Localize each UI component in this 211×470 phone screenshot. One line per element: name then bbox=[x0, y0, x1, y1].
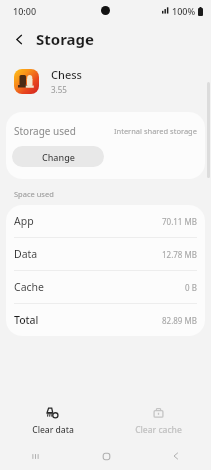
staticText: 70.11 MB bbox=[162, 216, 197, 227]
button[interactable]: Back bbox=[6, 26, 32, 52]
staticText: App bbox=[14, 214, 34, 228]
button[interactable]: Change bbox=[12, 146, 104, 167]
button[interactable]: Recent apps bbox=[0, 442, 71, 470]
button[interactable]: Total bbox=[6, 304, 205, 336]
staticText: Cache bbox=[14, 280, 44, 294]
staticText: 0 B bbox=[185, 282, 197, 293]
button[interactable]: Clear cache bbox=[105, 400, 211, 442]
button[interactable]: App bbox=[6, 205, 205, 238]
staticText: Space used bbox=[14, 189, 54, 199]
staticText: Internal shared storage bbox=[114, 126, 197, 136]
staticText: Chess bbox=[51, 67, 82, 82]
staticText: Storage used bbox=[14, 124, 76, 138]
button[interactable]: Back bbox=[141, 442, 211, 470]
staticText: 3.55 bbox=[51, 84, 67, 95]
button[interactable]: Data bbox=[6, 238, 205, 271]
staticText: 100% bbox=[172, 5, 196, 17]
staticText: Data bbox=[14, 247, 38, 261]
staticText: Storage bbox=[36, 29, 94, 49]
button[interactable]: Clear data bbox=[0, 400, 105, 442]
staticText: Clear data bbox=[32, 424, 74, 436]
staticText: Change bbox=[42, 151, 75, 163]
staticText: 82.89 MB bbox=[162, 315, 197, 326]
button[interactable]: Home bbox=[71, 442, 141, 470]
staticText: 12.78 MB bbox=[162, 249, 197, 260]
staticText: 10:00 bbox=[13, 5, 37, 17]
staticText: Total bbox=[14, 313, 39, 327]
button[interactable]: Cache bbox=[6, 271, 205, 304]
staticText: Clear cache bbox=[135, 424, 182, 436]
